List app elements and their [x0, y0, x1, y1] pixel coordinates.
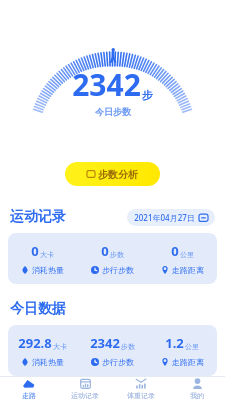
staticText: 公里: [185, 342, 199, 351]
staticText: 我的: [190, 391, 204, 400]
staticText: 走路距离: [172, 265, 204, 275]
button[interactable]: 0: [8, 233, 217, 284]
staticText: 步数: [121, 342, 135, 351]
staticText: 运动记录: [10, 208, 66, 226]
staticText: 消耗热量: [32, 265, 64, 275]
staticText: 大卡: [53, 342, 67, 351]
staticText: 公里: [180, 250, 194, 259]
staticText: 消耗热量: [32, 357, 64, 367]
staticText: 走路: [22, 391, 36, 400]
staticText: 步行步数: [102, 265, 134, 275]
staticText: 体重记录: [127, 391, 155, 400]
staticText: 2021年04月27日: [134, 212, 195, 223]
staticText: 0: [101, 242, 109, 260]
button[interactable]: 2021年04月27日: [127, 209, 215, 226]
staticText: 2342: [72, 64, 141, 105]
staticText: 今日数据: [10, 300, 66, 318]
button[interactable]: 体重记录: [113, 377, 169, 400]
button[interactable]: 我的: [169, 377, 225, 400]
other: 运动记录: [80, 378, 91, 389]
staticText: 1.2: [165, 334, 184, 352]
staticText: 步数分析: [98, 168, 138, 181]
button[interactable]: 步数分析: [65, 162, 160, 186]
staticText: 2342: [90, 334, 120, 352]
other: 走路: [22, 378, 35, 389]
staticText: 292.8: [18, 334, 52, 352]
staticText: 今日步数: [95, 106, 131, 117]
staticText: 步数: [110, 250, 124, 259]
staticText: 0: [171, 242, 179, 260]
button[interactable]: 292.8: [8, 325, 217, 376]
button[interactable]: 运动记录: [57, 377, 113, 400]
staticText: 步: [142, 88, 153, 102]
button[interactable]: 走路: [0, 377, 57, 400]
other: 选择日期: [199, 213, 208, 222]
other: 我的: [192, 378, 203, 389]
staticText: 走路距离: [172, 357, 204, 367]
other: 体重记录: [135, 378, 147, 389]
staticText: 运动记录: [71, 391, 99, 400]
staticText: 大卡: [40, 250, 54, 259]
staticText: 0: [31, 242, 39, 260]
staticText: 步行步数: [102, 357, 134, 367]
